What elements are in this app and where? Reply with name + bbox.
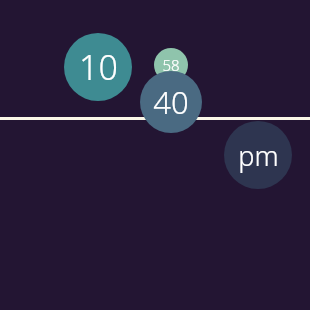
staticText: 58 <box>162 55 180 75</box>
staticText: 40 <box>153 81 189 123</box>
staticText: pm <box>238 137 279 174</box>
button[interactable]: Seconds 58 <box>154 48 188 82</box>
button[interactable]: Minutes 40 <box>140 71 202 133</box>
staticText: 10 <box>79 44 118 90</box>
button[interactable]: Hour 10 <box>64 33 132 101</box>
button[interactable]: PM <box>224 121 292 189</box>
